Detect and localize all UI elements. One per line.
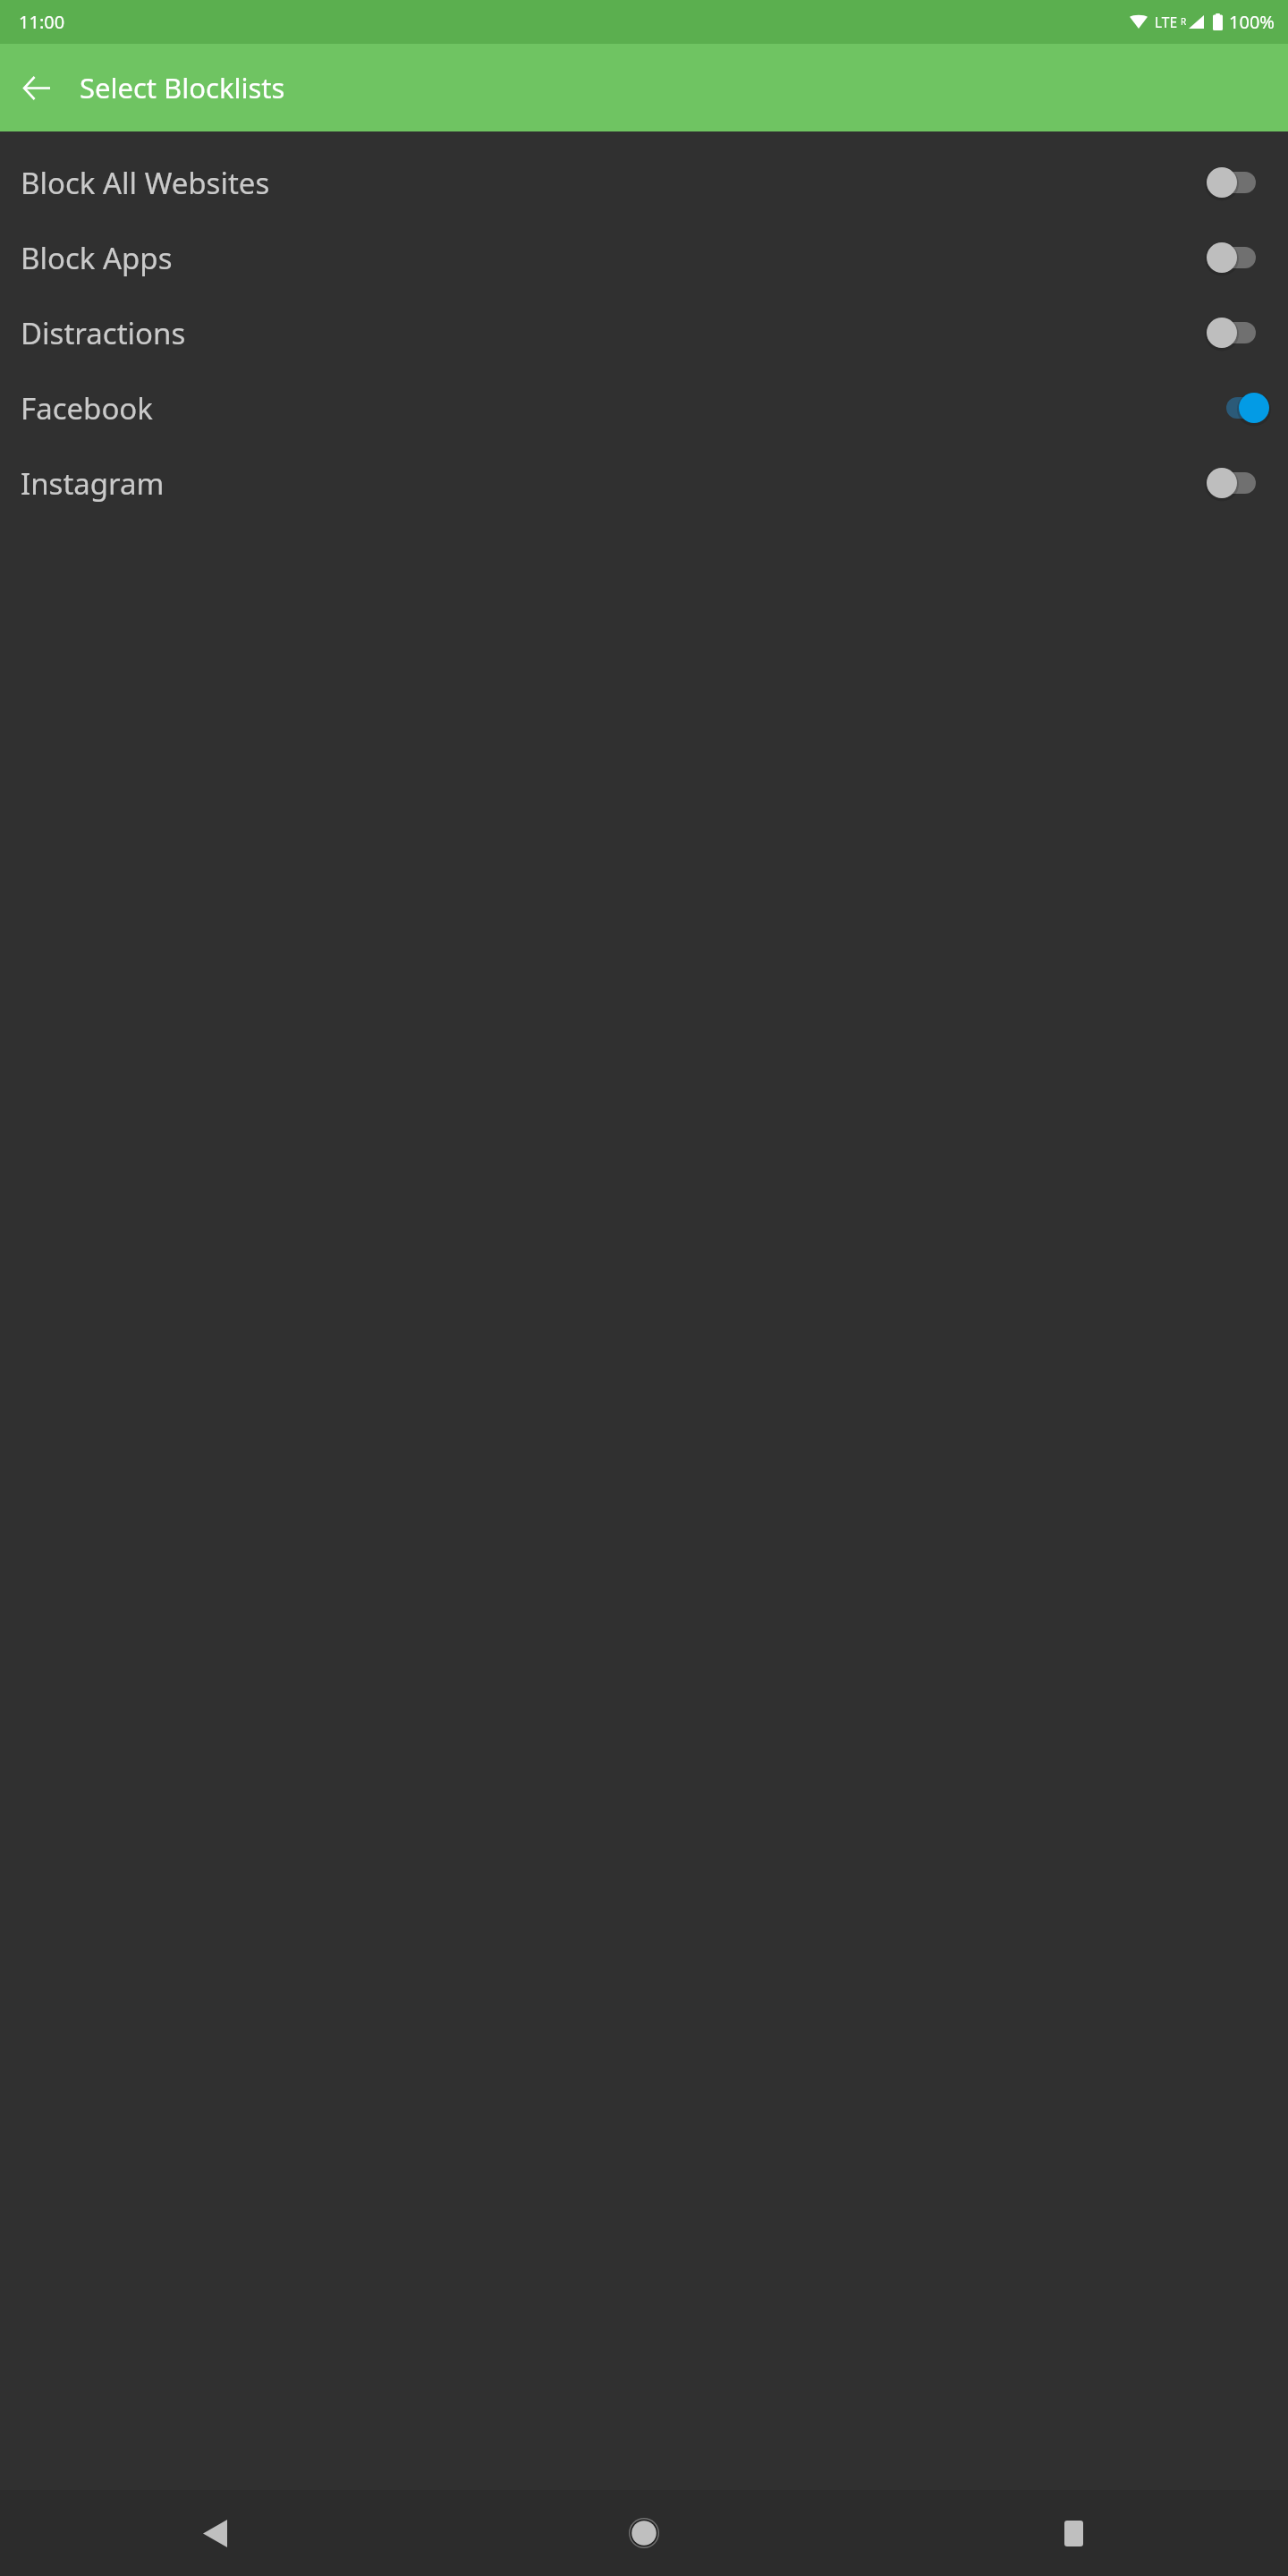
button[interactable]: Block All Websites — [0, 145, 1288, 220]
button[interactable]: Distractions — [0, 295, 1288, 370]
button[interactable]: Recent apps — [859, 2490, 1288, 2576]
button[interactable]: Instagram — [0, 445, 1288, 521]
staticText: Instagram — [21, 463, 1206, 504]
button[interactable]: Back — [15, 66, 58, 109]
button[interactable]: Home — [429, 2490, 859, 2576]
staticText: Block All Websites — [21, 163, 1206, 203]
staticText: R — [1181, 15, 1187, 28]
staticText: Block Apps — [21, 238, 1206, 278]
button[interactable]: Block Apps — [0, 220, 1288, 295]
staticText: LTE — [1155, 13, 1178, 31]
staticText: Facebook — [21, 388, 1206, 428]
staticText: Select Blocklists — [80, 69, 285, 106]
staticText: Distractions — [21, 313, 1206, 353]
button[interactable]: Back — [0, 2490, 429, 2576]
button[interactable]: Facebook — [0, 370, 1288, 445]
staticText: 11:00 — [19, 10, 65, 34]
staticText: 100% — [1229, 10, 1275, 34]
